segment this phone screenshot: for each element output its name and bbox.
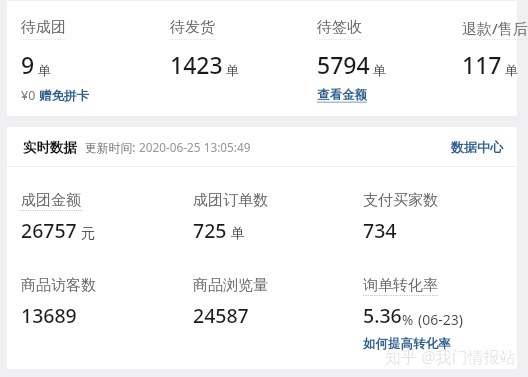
button[interactable]: 待签收 (303, 1, 450, 116)
staticText: 单 (373, 62, 386, 78)
staticText: 5794 (317, 49, 370, 80)
staticText: 知乎 @我门情报站 (385, 346, 516, 368)
staticText: 待成团 (21, 18, 66, 37)
button[interactable]: 如何提高转化率 (363, 336, 451, 352)
staticText: 查看金额 (317, 87, 367, 103)
staticText: 赠免拼卡 (39, 88, 89, 104)
staticText: 117 (462, 49, 502, 80)
staticText: 商品浏览量 (193, 276, 268, 295)
button[interactable]: 退款/售后 (448, 1, 517, 116)
button[interactable]: 数据中心 (451, 139, 503, 155)
staticText: 商品访客数 (21, 276, 96, 295)
staticText: 26757 (21, 217, 77, 244)
staticText: 5.36 (363, 302, 402, 329)
staticText: 支付买家数 (363, 191, 438, 210)
staticText: 单 (226, 62, 239, 78)
staticText: 询单转化率 (363, 276, 438, 295)
staticText: ¥0 (21, 87, 39, 104)
button[interactable]: 待发货 (156, 1, 303, 116)
button[interactable]: 成团订单数 (193, 191, 358, 251)
staticText: (06-23) (418, 310, 463, 329)
button[interactable]: 查看金额 (317, 87, 367, 103)
staticText: 24587 (193, 302, 249, 329)
staticText: 单 (38, 62, 51, 78)
staticText: 退款/售后 (462, 18, 528, 38)
staticText: 元 (81, 225, 95, 243)
staticText: 待签收 (317, 18, 362, 37)
staticText: 数据中心 (451, 139, 503, 155)
button[interactable]: 支付买家数 (363, 191, 513, 251)
staticText: 725 (193, 217, 227, 244)
staticText: 1423 (170, 49, 223, 80)
staticText: 实时数据 (23, 139, 77, 156)
button[interactable]: 成团金额 (21, 191, 186, 251)
staticText: 9 (21, 49, 35, 80)
staticText: 成团订单数 (193, 191, 268, 210)
button[interactable]: 商品访客数 (21, 276, 186, 336)
button[interactable]: 询单转化率 (363, 276, 513, 356)
staticText: 待发货 (170, 18, 215, 37)
staticText: 13689 (21, 302, 77, 329)
button[interactable]: 待成团 (7, 1, 154, 116)
button[interactable]: 商品浏览量 (193, 276, 358, 336)
staticText: 如何提高转化率 (363, 336, 451, 352)
staticText: 更新时间: (85, 139, 136, 155)
staticText: 734 (363, 217, 397, 244)
button[interactable]: ¥0 (21, 87, 89, 104)
staticText: 单 (505, 62, 518, 78)
staticText: 单 (231, 225, 245, 243)
staticText: 2020-06-25 13:05:49 (139, 139, 251, 155)
staticText: % (402, 311, 414, 329)
staticText: 成团金额 (21, 191, 81, 210)
